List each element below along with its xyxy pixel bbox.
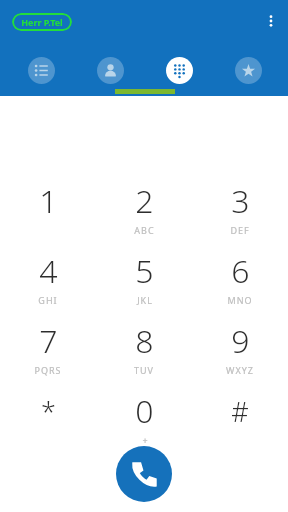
staticText: 6	[231, 249, 250, 293]
button[interactable]: Call	[116, 446, 172, 502]
staticText: 2	[135, 179, 154, 223]
staticText: ABC	[134, 224, 155, 236]
staticText: 0	[135, 389, 154, 433]
staticText: Herr P.Tel	[21, 16, 63, 28]
staticText: TUV	[134, 364, 154, 376]
button[interactable]: 8	[100, 313, 188, 381]
staticText: 3	[231, 179, 250, 223]
button[interactable]: 4	[4, 243, 92, 311]
button[interactable]: 0	[100, 383, 188, 451]
button[interactable]: Herr P.Tel	[12, 13, 72, 31]
button[interactable]: 7	[4, 313, 92, 381]
staticText: 5	[135, 249, 154, 293]
staticText: 7	[39, 319, 58, 363]
button[interactable]: More options	[257, 7, 285, 35]
staticText: WXYZ	[226, 364, 254, 376]
staticText: *	[41, 393, 56, 430]
button[interactable]: 5	[100, 243, 188, 311]
button[interactable]: Recent calls	[21, 50, 61, 90]
button[interactable]: 2	[100, 173, 188, 241]
staticText: MNO	[227, 294, 253, 306]
staticText: 4	[39, 249, 58, 293]
staticText: PQRS	[34, 364, 62, 376]
button[interactable]: 1	[4, 173, 92, 241]
button[interactable]: 3	[196, 173, 284, 241]
staticText: 1	[39, 179, 58, 223]
staticText: JKL	[137, 294, 153, 306]
button[interactable]: #	[196, 383, 284, 451]
staticText: GHI	[38, 294, 58, 306]
staticText: #	[231, 393, 249, 430]
staticText: DEF	[230, 224, 250, 236]
staticText: 9	[231, 319, 250, 363]
button[interactable]: Favourites	[228, 50, 268, 90]
button[interactable]: Dialpad	[159, 50, 199, 90]
button[interactable]: 6	[196, 243, 284, 311]
staticText: +	[142, 434, 148, 446]
staticText: 8	[135, 319, 154, 363]
button[interactable]: *	[4, 383, 92, 451]
button[interactable]: 9	[196, 313, 284, 381]
button[interactable]: Contacts	[90, 50, 130, 90]
